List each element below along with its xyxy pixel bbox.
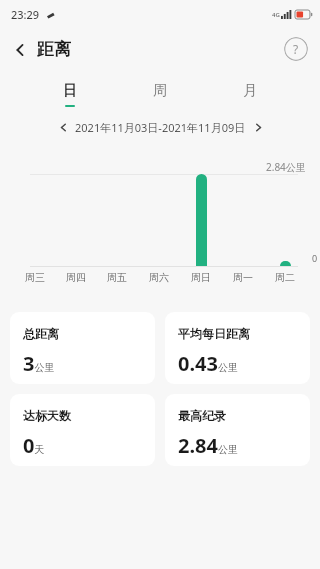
staticText: 2.84公里 bbox=[266, 160, 306, 174]
button[interactable]: 总距离 bbox=[10, 312, 155, 384]
staticText: 周五 bbox=[107, 271, 127, 284]
button[interactable]: 平均每日距离 bbox=[165, 312, 310, 384]
staticText: 最高纪录 bbox=[178, 408, 226, 423]
button[interactable]: Previous period bbox=[53, 117, 73, 137]
staticText: 周三 bbox=[25, 271, 45, 284]
staticText: 达标天数 bbox=[23, 408, 71, 423]
button[interactable]: 月 bbox=[224, 80, 276, 109]
button[interactable]: Back bbox=[6, 35, 77, 64]
button[interactable]: 最高纪录 bbox=[165, 394, 310, 466]
staticText: 周二 bbox=[275, 271, 295, 284]
button[interactable]: 日 bbox=[44, 80, 96, 109]
staticText: ? bbox=[293, 41, 299, 57]
staticText: 3公里 bbox=[23, 350, 55, 377]
staticText: 距离 bbox=[37, 39, 71, 60]
staticText: 周四 bbox=[66, 271, 86, 284]
staticText: 日 bbox=[63, 82, 77, 100]
staticText: 周一 bbox=[233, 271, 253, 284]
button[interactable]: Next period bbox=[248, 117, 268, 137]
button[interactable]: Help bbox=[284, 37, 308, 61]
staticText: 月 bbox=[243, 82, 257, 100]
staticText: 0天 bbox=[23, 432, 45, 459]
staticText: 周日 bbox=[191, 271, 211, 284]
staticText: 平均每日距离 bbox=[178, 326, 250, 341]
staticText: 周 bbox=[153, 82, 167, 100]
staticText: 周六 bbox=[149, 271, 169, 284]
button[interactable]: 周 bbox=[134, 80, 186, 109]
staticText: 2021年11月03日-2021年11月09日 bbox=[75, 120, 246, 135]
staticText: 0 bbox=[312, 252, 318, 264]
staticText: 总距离 bbox=[23, 326, 59, 341]
staticText: 4G bbox=[272, 11, 280, 19]
button[interactable]: 达标天数 bbox=[10, 394, 155, 466]
staticText: 2.84公里 bbox=[178, 432, 238, 459]
other: Back bbox=[12, 42, 28, 58]
staticText: 23:29 bbox=[11, 7, 40, 22]
staticText: 0.43公里 bbox=[178, 350, 238, 377]
